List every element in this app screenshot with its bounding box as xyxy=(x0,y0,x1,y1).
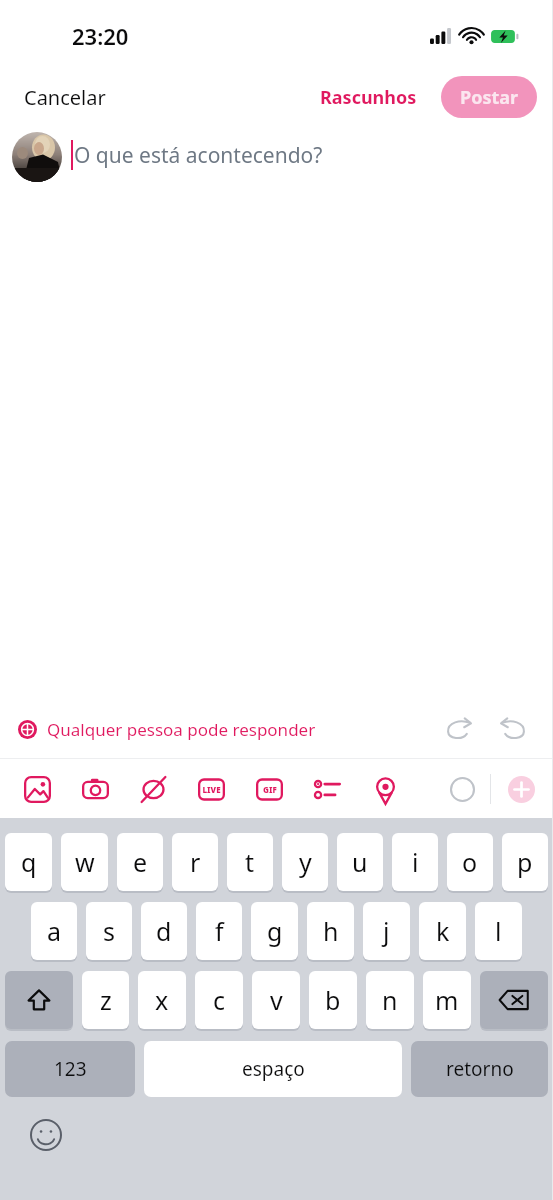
staticText: x xyxy=(155,983,169,1017)
staticText: LIVE xyxy=(202,784,221,795)
button[interactable]: Localização xyxy=(356,764,414,814)
button[interactable]: Cancelar xyxy=(0,76,118,119)
button[interactable]: w xyxy=(61,833,108,891)
staticText: m xyxy=(435,983,459,1017)
button[interactable]: x xyxy=(138,971,186,1029)
staticText: v xyxy=(270,983,283,1017)
staticText: Cancelar xyxy=(24,84,106,111)
button[interactable]: f xyxy=(196,902,242,960)
staticText: O que está acontecendo? xyxy=(74,141,323,170)
staticText: retorno xyxy=(446,1056,514,1082)
other: Shift xyxy=(5,971,73,1029)
button[interactable] xyxy=(12,132,62,182)
staticText: a xyxy=(47,914,62,948)
button[interactable]: k xyxy=(419,902,466,960)
button[interactable]: Imagem xyxy=(8,764,66,814)
button[interactable]: Câmera xyxy=(66,764,124,814)
button[interactable]: n xyxy=(366,971,414,1029)
button[interactable]: GIF xyxy=(240,764,298,814)
button[interactable]: Desfazer xyxy=(441,711,477,747)
button[interactable]: c xyxy=(195,971,243,1029)
button[interactable]: a xyxy=(31,902,77,960)
button[interactable]: s xyxy=(86,902,132,960)
staticText: t xyxy=(245,845,255,879)
staticText: 23:20 xyxy=(72,21,129,51)
button[interactable]: Qualquer pessoa pode responder xyxy=(14,714,320,745)
staticText: z xyxy=(100,983,112,1017)
button[interactable]: Adicionar post xyxy=(501,769,541,809)
staticText: p xyxy=(517,845,533,879)
button[interactable]: espaço xyxy=(144,1041,402,1097)
button[interactable]: Live xyxy=(182,764,240,814)
staticText: espaço xyxy=(242,1056,305,1082)
button[interactable]: u xyxy=(337,833,383,891)
button[interactable]: e xyxy=(117,833,163,891)
staticText: d xyxy=(156,914,172,948)
button[interactable] xyxy=(480,971,548,1029)
button[interactable]: Contador xyxy=(440,767,484,811)
staticText: w xyxy=(75,845,95,879)
button[interactable]: Refazer xyxy=(495,711,531,747)
staticText: e xyxy=(133,845,148,879)
button[interactable]: r xyxy=(172,833,218,891)
staticText: 123 xyxy=(54,1056,87,1082)
button[interactable]: Emoji xyxy=(26,1115,66,1155)
button[interactable]: g xyxy=(251,902,298,960)
button[interactable]: o xyxy=(447,833,493,891)
staticText: c xyxy=(213,983,226,1017)
staticText: GIF xyxy=(263,784,277,795)
button[interactable]: v xyxy=(252,971,300,1029)
staticText: r xyxy=(190,845,201,879)
staticText: u xyxy=(352,845,368,879)
button[interactable]: retorno xyxy=(411,1041,548,1097)
staticText: f xyxy=(215,914,224,948)
staticText: b xyxy=(325,983,341,1017)
button[interactable]: j xyxy=(363,902,410,960)
staticText: Postar xyxy=(460,85,519,110)
other: Apagar xyxy=(480,971,548,1029)
staticText: j xyxy=(383,914,390,948)
button[interactable]: Enquete xyxy=(298,764,356,814)
staticText: s xyxy=(103,914,115,948)
staticText: g xyxy=(267,914,283,948)
staticText: h xyxy=(323,914,339,948)
button[interactable]: q xyxy=(5,833,52,891)
button[interactable]: p xyxy=(502,833,548,891)
staticText: y xyxy=(299,845,312,879)
button[interactable]: d xyxy=(141,902,187,960)
staticText: Qualquer pessoa pode responder xyxy=(47,718,316,741)
staticText: q xyxy=(21,845,37,879)
button[interactable]: Editar xyxy=(124,764,182,814)
button[interactable]: h xyxy=(307,902,354,960)
staticText: i xyxy=(412,845,419,879)
button[interactable]: Rascunhos xyxy=(314,79,423,116)
staticText: Rascunhos xyxy=(320,85,417,110)
button[interactable]: t xyxy=(227,833,273,891)
button[interactable] xyxy=(5,971,73,1029)
button[interactable]: z xyxy=(82,971,129,1029)
button[interactable]: Postar xyxy=(441,76,537,118)
button[interactable]: l xyxy=(475,902,522,960)
staticText: k xyxy=(436,914,450,948)
button[interactable]: b xyxy=(309,971,357,1029)
button[interactable]: 123 xyxy=(5,1041,135,1097)
staticText: n xyxy=(382,983,398,1017)
button[interactable]: i xyxy=(392,833,438,891)
button[interactable]: m xyxy=(423,971,471,1029)
staticText: o xyxy=(462,845,478,879)
staticText: l xyxy=(495,914,502,948)
button[interactable]: y xyxy=(282,833,328,891)
